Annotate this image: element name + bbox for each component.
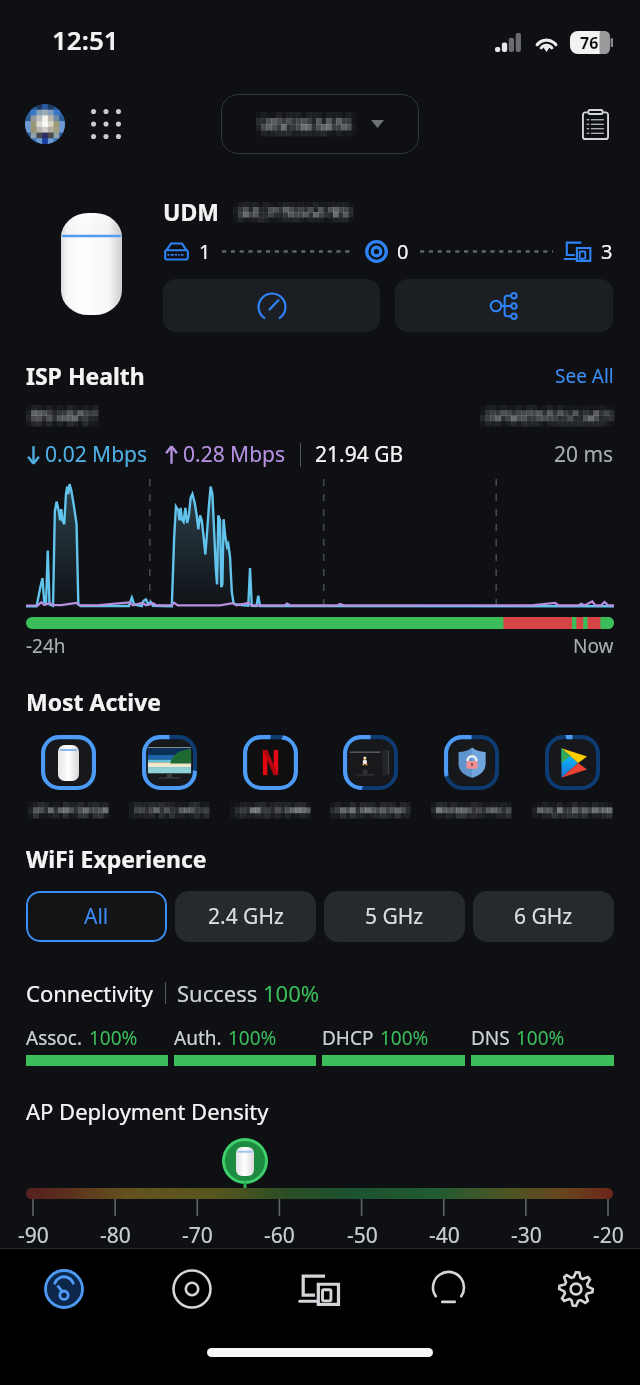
staticText: 0 <box>397 238 409 264</box>
button[interactable]: Insights <box>411 1252 485 1326</box>
staticText: 0.02 Mbps <box>45 440 148 469</box>
staticText: AP Deployment Density <box>26 1096 269 1126</box>
staticText: 100% <box>89 1025 138 1051</box>
button[interactable]: Site selector <box>221 94 419 154</box>
staticText: 6 GHz <box>514 902 573 931</box>
staticText: 100% <box>516 1025 565 1051</box>
staticText: -30 <box>511 1221 542 1250</box>
staticText: See All <box>555 363 614 389</box>
button[interactable]: Topology <box>395 279 613 332</box>
staticText: Assoc. <box>26 1025 83 1051</box>
staticText: -20 <box>593 1221 624 1250</box>
staticText: -60 <box>264 1221 295 1250</box>
button[interactable] <box>26 735 110 818</box>
staticText: Most Active <box>26 686 162 717</box>
button[interactable]: Settings <box>539 1252 613 1326</box>
button[interactable]: Clients <box>283 1252 357 1326</box>
button[interactable] <box>429 735 513 818</box>
button[interactable]: 6 GHz <box>473 891 614 942</box>
staticText: Success <box>177 978 263 1008</box>
staticText: Now <box>573 633 614 659</box>
button[interactable]: See All <box>555 363 614 389</box>
staticText: DNS <box>471 1025 510 1051</box>
staticText: 2.4 GHz <box>208 902 284 931</box>
button[interactable]: 5 GHz <box>324 891 465 942</box>
button[interactable] <box>127 735 211 818</box>
staticText: DHCP <box>322 1025 374 1051</box>
staticText: 20 ms <box>554 440 614 469</box>
staticText: 100% <box>228 1025 277 1051</box>
staticText: 76 <box>580 32 599 54</box>
staticText: UDM <box>163 196 219 227</box>
staticText: 0.28 Mbps <box>183 440 286 469</box>
staticText: 5 GHz <box>365 902 424 931</box>
staticText: -40 <box>429 1221 460 1250</box>
button[interactable]: Devices <box>155 1252 229 1326</box>
staticText: -80 <box>100 1221 131 1250</box>
staticText: 12:51 <box>52 22 119 57</box>
staticText: -24h <box>26 633 66 659</box>
staticText: WiFi Experience <box>26 843 207 874</box>
staticText: ISP Health <box>26 360 145 391</box>
button[interactable]: 2.4 GHz <box>175 891 316 942</box>
button[interactable] <box>328 735 412 818</box>
staticText: 100% <box>380 1025 429 1051</box>
staticText: -70 <box>182 1221 213 1250</box>
button[interactable] <box>530 735 614 818</box>
staticText: -90 <box>18 1221 49 1250</box>
button[interactable]: Notes <box>572 101 618 147</box>
staticText: 3 <box>601 238 613 264</box>
button[interactable]: All <box>26 891 167 942</box>
staticText: All <box>84 902 109 931</box>
button[interactable]: Dashboard <box>27 1252 101 1326</box>
staticText: -50 <box>347 1221 378 1250</box>
button[interactable]: Account <box>22 101 68 147</box>
staticText: 1 <box>199 238 211 264</box>
staticText: Connectivity <box>26 978 154 1008</box>
button[interactable] <box>228 735 312 818</box>
button[interactable]: Apps <box>82 100 130 148</box>
staticText: 21.94 GB <box>315 440 404 469</box>
staticText: 100% <box>263 978 320 1008</box>
staticText: Auth. <box>174 1025 222 1051</box>
button[interactable]: Speed test <box>163 279 380 332</box>
